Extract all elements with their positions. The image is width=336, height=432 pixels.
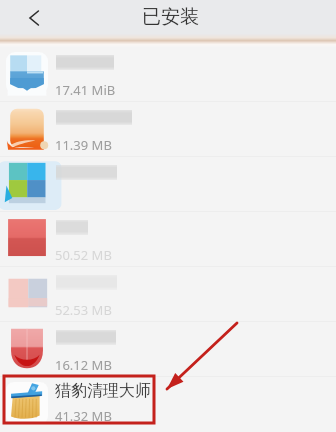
button[interactable] <box>0 157 336 212</box>
button[interactable]: 16.12 MB <box>0 322 336 377</box>
staticText: 41.32 MB <box>55 407 112 425</box>
staticText: 50.52 MB <box>55 246 112 264</box>
staticText: 11.39 MB <box>55 136 112 154</box>
button[interactable]: Back <box>24 8 44 28</box>
button[interactable]: 52.53 MB <box>0 267 336 322</box>
button[interactable]: 11.39 MB <box>0 102 336 157</box>
staticText: 16.12 MB <box>55 356 112 374</box>
staticText: 猎豹清理大师 <box>55 381 151 401</box>
button[interactable]: 17.41 MiB <box>0 47 336 102</box>
button[interactable]: 猎豹清理大师 <box>0 377 336 432</box>
button[interactable]: 50.52 MB <box>0 212 336 267</box>
staticText: 52.53 MB <box>55 301 112 319</box>
staticText: 17.41 MiB <box>55 81 116 99</box>
staticText: 已安装 <box>142 5 199 29</box>
